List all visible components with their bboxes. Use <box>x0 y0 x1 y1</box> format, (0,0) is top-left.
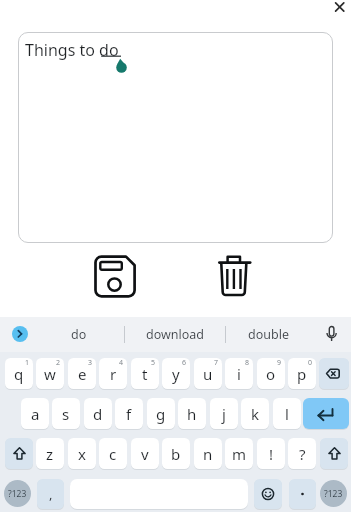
button[interactable]: r <box>99 358 127 389</box>
staticText: 8 <box>245 358 250 368</box>
staticText: h <box>187 404 197 424</box>
button[interactable]: , <box>37 479 64 509</box>
button[interactable]: j <box>210 398 238 429</box>
staticText: v <box>141 444 149 464</box>
staticText: , <box>49 485 53 503</box>
staticText: ! <box>269 444 274 464</box>
staticText: 0 <box>308 358 313 368</box>
button[interactable]: Things to do <box>18 32 333 243</box>
staticText: m <box>232 444 247 464</box>
staticText: b <box>171 444 181 464</box>
staticText: 4 <box>119 358 124 368</box>
staticText: do <box>71 326 87 343</box>
staticText: i <box>237 364 241 384</box>
button[interactable]: f <box>115 398 143 429</box>
staticText: q <box>14 364 24 384</box>
staticText: ?123 <box>324 488 343 500</box>
button[interactable]: p <box>288 358 316 389</box>
staticText: l <box>285 404 289 424</box>
button[interactable]: e <box>68 358 96 389</box>
button[interactable]: ! <box>257 438 285 469</box>
staticText: j <box>222 404 226 424</box>
button[interactable]: g <box>147 398 175 429</box>
staticText: 7 <box>214 358 219 368</box>
button[interactable]: h <box>178 398 206 429</box>
button[interactable]: double <box>226 317 310 352</box>
button[interactable] <box>91 252 139 300</box>
button[interactable] <box>289 479 316 509</box>
button[interactable] <box>319 358 349 389</box>
staticText: e <box>78 364 87 384</box>
button[interactable]: v <box>131 438 159 469</box>
staticText: k <box>251 404 260 424</box>
button[interactable]: q <box>5 358 33 389</box>
button[interactable]: download <box>125 317 225 352</box>
button[interactable]: i <box>225 358 253 389</box>
staticText: download <box>146 326 205 343</box>
button[interactable]: do <box>44 317 113 352</box>
staticText: 6 <box>182 358 187 368</box>
staticText: 5 <box>151 358 156 368</box>
button[interactable]: d <box>84 398 112 429</box>
staticText: o <box>266 364 276 384</box>
button[interactable]: ?123 <box>4 480 31 507</box>
staticText: 3 <box>88 358 93 368</box>
staticText: double <box>248 326 289 343</box>
button[interactable] <box>5 438 33 469</box>
button[interactable]: t <box>131 358 159 389</box>
button[interactable]: ?123 <box>320 480 347 507</box>
staticText: z <box>46 444 54 464</box>
staticText: c <box>109 444 117 464</box>
button[interactable] <box>254 479 282 509</box>
button[interactable]: w <box>36 358 64 389</box>
staticText: t <box>142 364 148 384</box>
staticText: u <box>203 364 213 384</box>
button[interactable] <box>303 398 349 429</box>
staticText: 1 <box>25 358 30 368</box>
button[interactable]: l <box>273 398 301 429</box>
staticText: ?123 <box>8 488 27 500</box>
staticText: f <box>126 404 132 424</box>
button[interactable]: z <box>36 438 64 469</box>
staticText: r <box>110 364 117 384</box>
button[interactable] <box>12 326 28 342</box>
button[interactable] <box>211 252 259 300</box>
button[interactable]: c <box>99 438 127 469</box>
staticText: a <box>31 404 40 424</box>
staticText: 2 <box>56 358 61 368</box>
button[interactable] <box>330 0 348 18</box>
button[interactable] <box>320 438 348 469</box>
staticText: w <box>44 364 56 384</box>
button[interactable]: k <box>241 398 269 429</box>
staticText: Things to do <box>25 39 119 61</box>
button[interactable]: x <box>68 438 96 469</box>
staticText: y <box>172 364 180 384</box>
button[interactable]: m <box>225 438 253 469</box>
staticText: 9 <box>277 358 282 368</box>
staticText: g <box>156 404 166 424</box>
staticText: d <box>93 404 103 424</box>
button[interactable]: u <box>194 358 222 389</box>
staticText: p <box>297 364 307 384</box>
button[interactable]: n <box>194 438 222 469</box>
button[interactable]: o <box>257 358 285 389</box>
button[interactable]: b <box>162 438 190 469</box>
staticText: s <box>62 404 70 424</box>
staticText: n <box>203 444 213 464</box>
button[interactable]: ? <box>288 438 316 469</box>
button[interactable]: y <box>162 358 190 389</box>
staticText: ? <box>299 444 306 464</box>
button[interactable]: a <box>21 398 49 429</box>
staticText: x <box>78 444 86 464</box>
button[interactable]: s <box>52 398 80 429</box>
